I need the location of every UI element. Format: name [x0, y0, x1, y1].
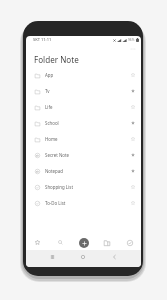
button[interactable]: Secret Note	[26, 147, 141, 163]
staticText: App	[45, 72, 131, 78]
staticText: Home	[45, 136, 131, 142]
staticText: Secret Note	[45, 152, 131, 158]
staticText: To-Do List	[45, 200, 131, 206]
button[interactable]: Folders	[101, 237, 112, 248]
button[interactable]: Life	[26, 99, 141, 115]
button[interactable]: Tasks	[124, 237, 135, 248]
staticText: Notepad	[45, 168, 131, 174]
button[interactable]: Shopping List	[26, 179, 141, 195]
button[interactable]: School	[26, 115, 141, 131]
staticText: Shopping List	[45, 184, 131, 190]
staticText: SKT 11:11	[33, 37, 52, 42]
button[interactable]: Notepad	[26, 163, 141, 179]
button[interactable]: Search	[55, 237, 66, 248]
staticText: Tv	[45, 88, 131, 94]
button[interactable]: App	[26, 67, 141, 83]
button[interactable]: Back	[111, 254, 117, 260]
staticText: Folder Note	[34, 54, 79, 65]
button[interactable]: Tv	[26, 83, 141, 99]
button[interactable]: Favorites	[32, 237, 43, 248]
staticText: School	[45, 120, 131, 126]
button[interactable]: Home	[26, 131, 141, 147]
button[interactable]: Recents	[49, 254, 55, 260]
button[interactable]: Add note	[78, 237, 89, 248]
button[interactable]: Home	[80, 254, 86, 260]
button[interactable]: To-Do List	[26, 195, 141, 211]
staticText: 96%	[128, 38, 135, 42]
staticText: Life	[45, 104, 131, 110]
